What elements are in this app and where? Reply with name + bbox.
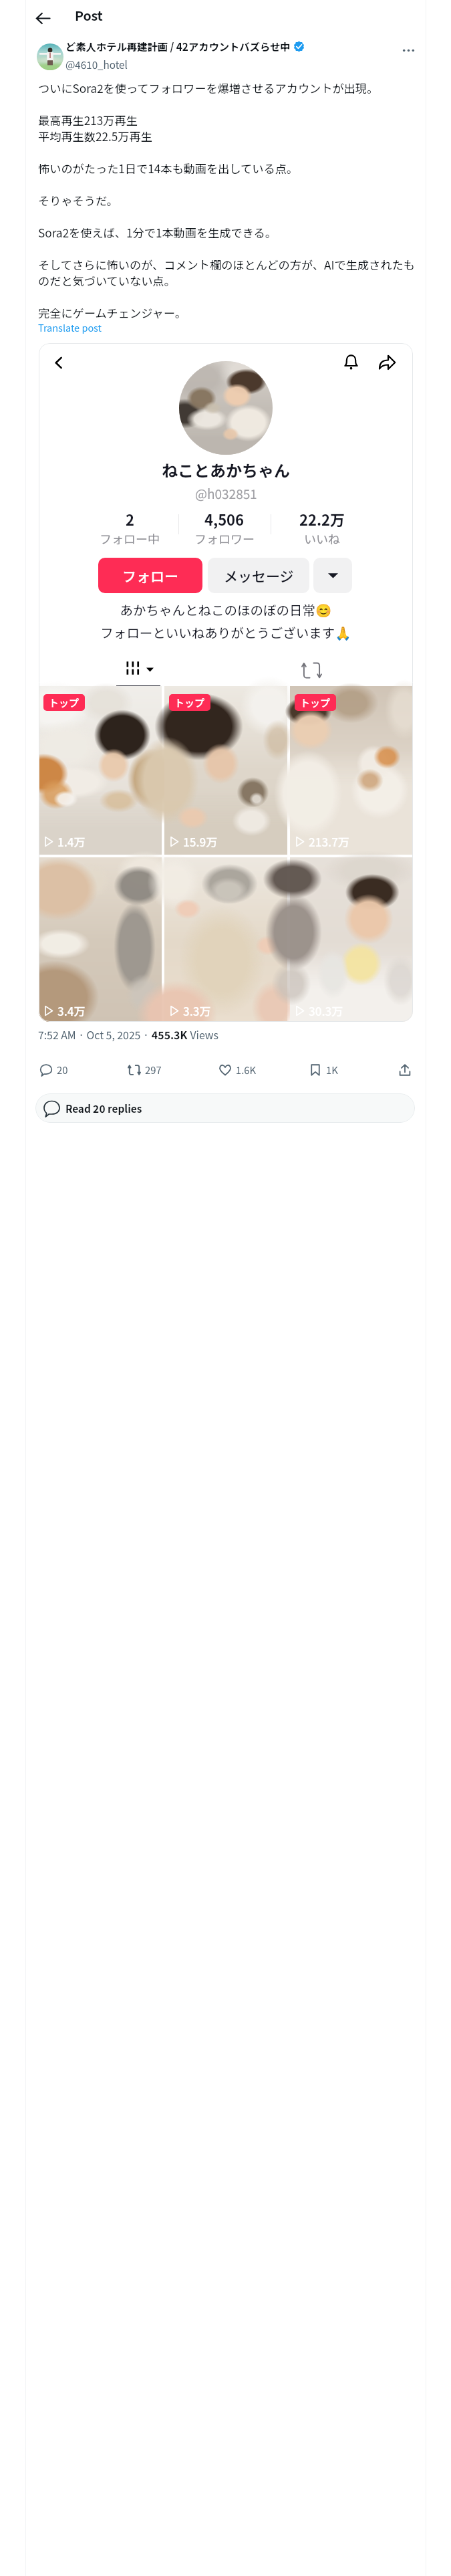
staticText: ど素人ホテル再建計画 / 42アカウントバズらせ中 — [65, 39, 291, 53]
button[interactable]: 4,506 — [175, 508, 274, 547]
staticText: 3.3万 — [183, 1002, 211, 1019]
staticText: 7:52 AM · Oct 5, 2025 · — [38, 1027, 152, 1043]
button[interactable]: More options — [313, 558, 352, 593]
button[interactable]: Videos tab — [106, 653, 173, 683]
staticText: 455.3K — [152, 1027, 188, 1043]
staticText: 3.4万 — [57, 1002, 86, 1019]
staticText: 20 — [57, 1063, 68, 1077]
button[interactable] — [37, 43, 63, 70]
button[interactable]: Video 3.3万 — [164, 857, 287, 1022]
staticText: トップ — [49, 695, 80, 710]
staticText: 1.6K — [236, 1063, 257, 1077]
button[interactable]: Video 1.4万 — [39, 686, 162, 855]
button[interactable]: Reposts tab — [278, 655, 345, 685]
staticText: @h032851 — [195, 484, 257, 503]
staticText: Post — [75, 5, 103, 24]
button[interactable]: Video 15.9万 — [164, 686, 287, 855]
staticText: 2 — [126, 508, 134, 530]
staticText: トップ — [300, 695, 331, 710]
staticText: 30.3万 — [309, 1002, 343, 1019]
staticText: フォロワー — [194, 530, 255, 547]
button[interactable]: Video 30.3万 — [290, 857, 413, 1022]
staticText: Views — [188, 1027, 218, 1043]
staticText: 297 — [145, 1063, 162, 1077]
button[interactable]: 297 — [123, 1059, 167, 1081]
staticText: 22.2万 — [299, 508, 345, 530]
staticText: 1K — [326, 1063, 338, 1077]
button[interactable]: Back — [45, 350, 71, 375]
staticText: いいね — [304, 530, 340, 547]
staticText: あかちゃんとねこのほのぼの日常😊 フォローといいねありがとうございます🙏 — [100, 600, 351, 642]
staticText: 4,506 — [204, 508, 245, 530]
button[interactable]: More — [397, 39, 420, 62]
button[interactable]: Read 20 replies — [35, 1093, 415, 1123]
staticText: 15.9万 — [183, 833, 218, 850]
button[interactable]: Video 3.4万 — [39, 857, 162, 1022]
staticText: フォロー中 — [100, 530, 160, 547]
button[interactable]: 22.2万 — [273, 508, 371, 547]
button[interactable]: Translate post — [38, 320, 102, 334]
staticText: フォロー — [122, 566, 178, 586]
staticText: メッセージ — [224, 566, 294, 586]
button[interactable]: メッセージ — [208, 558, 309, 593]
button[interactable]: 20 — [35, 1059, 73, 1081]
staticText: Read 20 replies — [65, 1101, 142, 1115]
button[interactable]: Video 213.7万 — [290, 686, 413, 855]
staticText: トップ — [174, 695, 205, 710]
staticText: 1.4万 — [57, 833, 86, 850]
button[interactable]: Back — [30, 5, 55, 31]
button[interactable]: Share profile — [374, 349, 400, 374]
button[interactable]: Back — [39, 343, 413, 1022]
button[interactable]: フォロー — [98, 558, 202, 593]
staticText: @4610_hotel — [65, 57, 128, 72]
staticText: 213.7万 — [309, 833, 349, 850]
staticText: ついにSora2を使ってフォロワーを爆増させるアカウントが出現。 最高再生213… — [38, 80, 421, 321]
button[interactable]: Notifications — [338, 349, 363, 374]
button[interactable]: 1K — [304, 1059, 343, 1081]
button[interactable]: 2 — [80, 508, 179, 547]
staticText: Translate post — [38, 320, 102, 334]
staticText: ねことあかちゃん — [162, 458, 290, 481]
button[interactable]: 1.6K — [214, 1059, 262, 1081]
button[interactable]: Share — [394, 1059, 416, 1081]
